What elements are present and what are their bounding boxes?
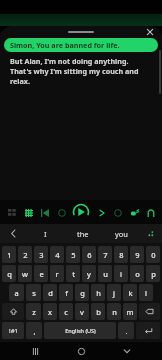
staticText: t [72, 269, 75, 279]
button[interactable]: p [146, 265, 160, 282]
staticText: , [33, 326, 36, 336]
button[interactable]: j [107, 284, 121, 301]
staticText: p [151, 269, 156, 279]
staticText: v [80, 307, 84, 317]
staticText: But Alan, I'm not doing anything. That's… [10, 56, 152, 86]
staticText: d [48, 288, 53, 298]
button[interactable]: 1 [2, 246, 16, 263]
staticText: b [96, 307, 101, 317]
staticText: i [120, 269, 122, 279]
staticText: k [128, 288, 133, 298]
button[interactable]: 4 [50, 246, 64, 263]
button[interactable]: q [2, 265, 16, 282]
staticText: !#1 [9, 327, 18, 335]
button[interactable]: w [18, 265, 32, 282]
button[interactable]: you [102, 224, 140, 243]
staticText: s [32, 288, 36, 298]
staticText: Simon, You are banned for life. [10, 40, 120, 50]
button[interactable]: h [91, 284, 105, 301]
staticText: y [87, 269, 91, 279]
staticText: z [32, 307, 36, 317]
button[interactable]: . [118, 322, 134, 339]
staticText: 1 [7, 250, 12, 260]
button[interactable]: 7 [98, 246, 112, 263]
staticText: 4 [55, 250, 60, 260]
button[interactable]: c [59, 303, 73, 320]
button[interactable]: Share [145, 207, 156, 218]
button[interactable]: a [9, 284, 24, 301]
button[interactable]: f [59, 284, 73, 301]
button[interactable]: English (US) [44, 322, 116, 339]
button[interactable]: l [139, 284, 153, 301]
staticText: o [135, 269, 140, 279]
staticText: 9 [135, 250, 140, 260]
staticText: English (US) [65, 327, 96, 334]
button[interactable]: Backspace [139, 303, 160, 320]
button[interactable]: !#1 [2, 322, 24, 339]
button[interactable]: i [114, 265, 128, 282]
button[interactable]: Recents [24, 342, 46, 360]
button[interactable]: More [140, 224, 162, 243]
staticText: h [96, 288, 101, 298]
button[interactable]: Forward [112, 207, 123, 218]
button[interactable]: 8 [114, 246, 128, 263]
button[interactable]: Enter [136, 322, 160, 339]
button[interactable]: Shift [2, 303, 24, 320]
staticText: 6 [87, 250, 92, 260]
staticText: I [44, 229, 47, 239]
staticText: 8 [119, 250, 124, 260]
button[interactable]: g [75, 284, 89, 301]
button[interactable]: Speaker [129, 207, 140, 218]
button[interactable]: 0 [146, 246, 160, 263]
button[interactable]: 2 [18, 246, 32, 263]
button[interactable]: n [107, 303, 121, 320]
button[interactable]: t [66, 265, 80, 282]
staticText: x [48, 307, 52, 317]
button[interactable]: the [64, 224, 102, 243]
staticText: 2 [23, 250, 28, 260]
staticText: 5 [71, 250, 76, 260]
button[interactable]: k [123, 284, 137, 301]
staticText: c [64, 307, 68, 317]
button[interactable]: Next [96, 207, 107, 218]
button[interactable]: d [43, 284, 57, 301]
button[interactable]: Rewind [56, 207, 67, 218]
staticText: the [77, 229, 89, 239]
button[interactable]: 5 [66, 246, 80, 263]
button[interactable]: Home [70, 342, 92, 360]
button[interactable]: 3 [34, 246, 48, 263]
button[interactable]: , [26, 322, 42, 339]
staticText: m [126, 307, 134, 317]
staticText: n [112, 307, 117, 317]
staticText: f [65, 288, 68, 298]
button[interactable]: Close [144, 26, 156, 38]
staticText: g [80, 288, 85, 298]
button[interactable]: Back [0, 224, 26, 243]
staticText: . [125, 326, 128, 336]
button[interactable]: b [91, 303, 105, 320]
button[interactable]: y [82, 265, 96, 282]
staticText: j [113, 288, 115, 298]
button[interactable]: u [98, 265, 112, 282]
staticText: a [14, 288, 19, 298]
button[interactable]: Simon, You are banned for life. [4, 38, 158, 52]
staticText: 7 [103, 250, 108, 260]
button[interactable]: Previous [39, 207, 50, 218]
button[interactable]: z [26, 303, 41, 320]
button[interactable]: Queue [6, 207, 17, 218]
button[interactable]: I [26, 224, 64, 243]
staticText: e [39, 269, 44, 279]
button[interactable]: e [34, 265, 48, 282]
button[interactable]: r [50, 265, 64, 282]
staticText: w [22, 269, 28, 279]
button[interactable]: 6 [82, 246, 96, 263]
button[interactable]: s [26, 284, 41, 301]
button[interactable]: 9 [130, 246, 144, 263]
button[interactable]: Play [72, 203, 90, 221]
button[interactable]: v [75, 303, 89, 320]
button[interactable]: Back [116, 342, 138, 360]
button[interactable]: m [123, 303, 137, 320]
button[interactable]: x [43, 303, 57, 320]
button[interactable]: o [130, 265, 144, 282]
button[interactable]: Equalizer [23, 207, 34, 218]
